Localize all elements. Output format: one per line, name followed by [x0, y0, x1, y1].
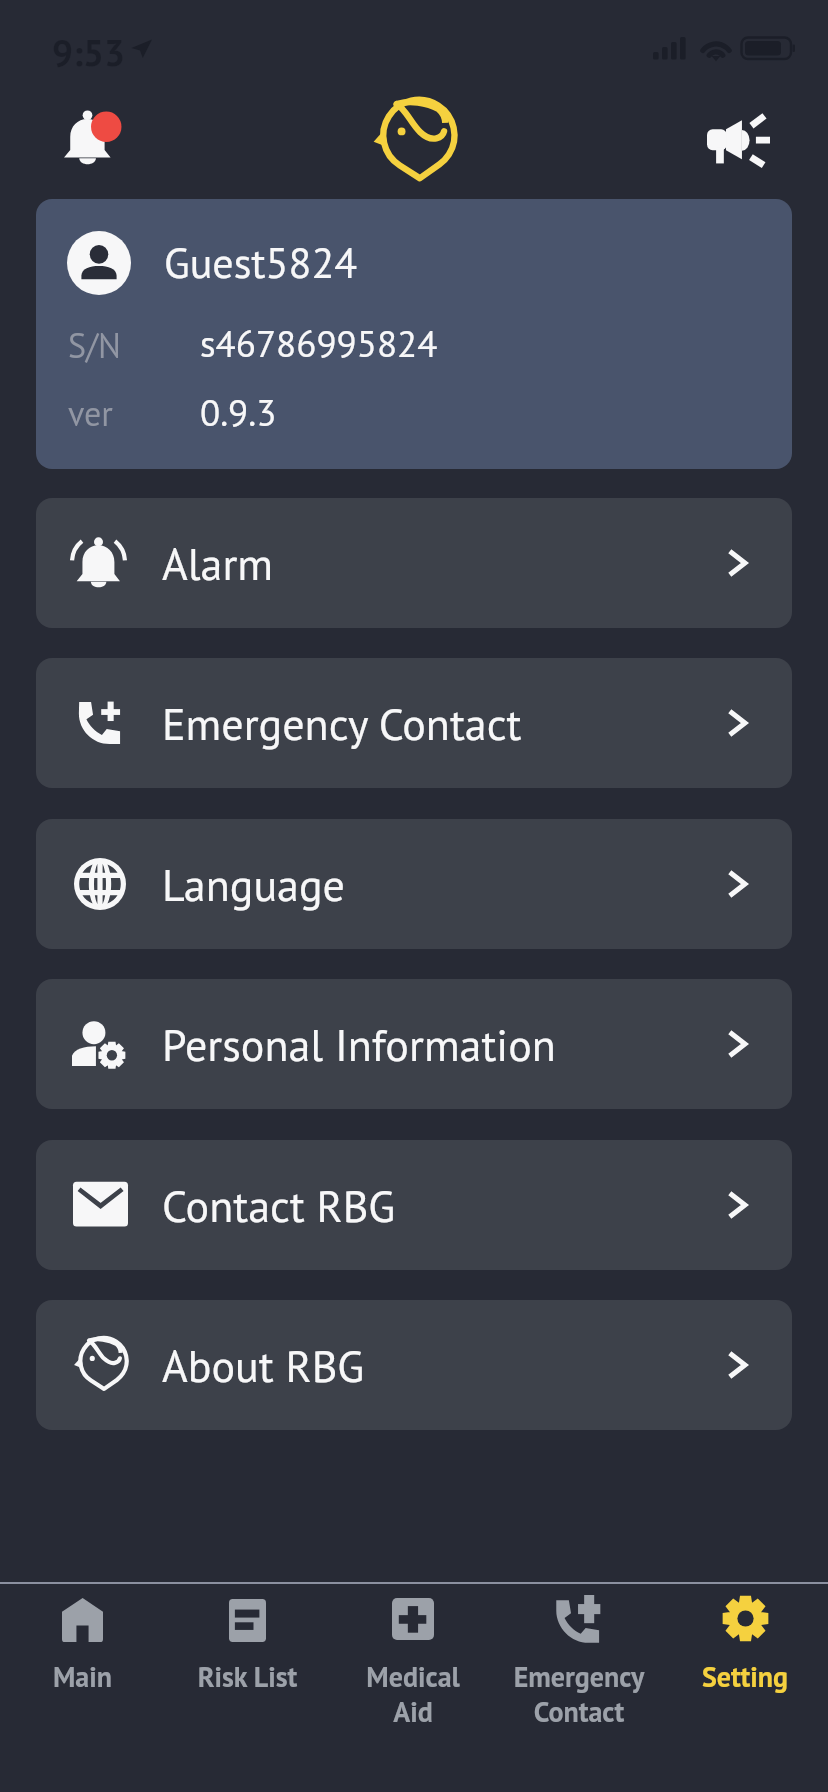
button[interactable]: Alarm	[36, 498, 792, 628]
button[interactable]: Personal Information	[36, 979, 792, 1109]
staticText: Guest5824	[164, 235, 358, 289]
button[interactable]: Emergency Contact	[36, 658, 792, 788]
staticText: Setting	[662, 1658, 828, 1694]
staticText: Main	[0, 1658, 165, 1694]
button[interactable]: Setting	[662, 1584, 828, 1792]
button[interactable]: Notifications	[36, 88, 140, 192]
button[interactable]: Announcements	[688, 88, 792, 192]
staticText: Emergency Contact	[496, 1658, 662, 1729]
staticText: Language	[162, 856, 345, 913]
staticText: ver	[68, 391, 113, 435]
button[interactable]: Language	[36, 819, 792, 949]
staticText: S/N	[68, 323, 121, 367]
button[interactable]: Main	[0, 1584, 165, 1792]
staticText: s46786995824	[200, 319, 438, 367]
button[interactable]: About RBG	[36, 1300, 792, 1430]
staticText: Personal Information	[162, 1016, 556, 1073]
staticText: About RBG	[162, 1337, 365, 1394]
staticText: 9:53	[52, 28, 125, 76]
staticText: 0.9.3	[200, 388, 277, 436]
staticText: Medical Aid	[330, 1658, 496, 1729]
button[interactable]: Risk List	[165, 1584, 330, 1792]
button[interactable]: Contact RBG	[36, 1140, 792, 1270]
staticText: Emergency Contact	[162, 695, 522, 752]
staticText: Risk List	[165, 1658, 330, 1694]
button[interactable]: Guest5824	[36, 199, 792, 469]
button[interactable]: Medical Aid	[330, 1584, 496, 1792]
button[interactable]: Emergency Contact	[496, 1584, 662, 1792]
staticText: Contact RBG	[162, 1177, 396, 1234]
staticText: Alarm	[162, 535, 274, 592]
